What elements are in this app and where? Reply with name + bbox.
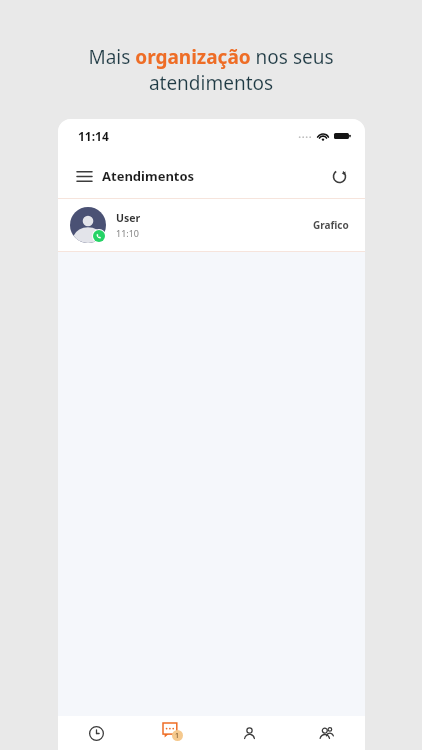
button[interactable]: Contacts: [211, 716, 288, 750]
staticText: 11:14: [78, 128, 109, 144]
button[interactable]: Refresh: [321, 158, 357, 194]
staticText: 1: [175, 731, 180, 741]
button[interactable]: Groups: [288, 716, 365, 750]
staticText: User: [116, 211, 141, 225]
staticText: Atendimentos: [102, 167, 195, 185]
button[interactable]: Recents: [58, 716, 134, 750]
button[interactable]: User: [58, 199, 365, 251]
staticText: Grafico: [313, 218, 349, 232]
staticText: Mais organização nos seus atendimentos: [88, 44, 334, 96]
staticText: 11:10: [116, 227, 140, 239]
button[interactable]: Chats: [134, 716, 211, 750]
button[interactable]: Menu: [66, 158, 102, 194]
